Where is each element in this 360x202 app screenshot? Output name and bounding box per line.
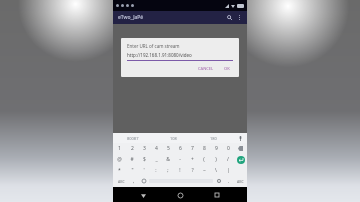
button[interactable]: Home bbox=[173, 188, 187, 202]
button[interactable]: # bbox=[126, 154, 138, 165]
button[interactable]: _ bbox=[150, 154, 162, 165]
staticText: ) bbox=[215, 156, 217, 163]
button[interactable]: 9 bbox=[210, 143, 222, 154]
staticText: - bbox=[179, 156, 181, 163]
button[interactable]: Back bbox=[136, 188, 150, 202]
staticText: * bbox=[118, 167, 121, 174]
button[interactable]: ~ bbox=[198, 165, 210, 176]
button[interactable]: . bbox=[224, 176, 233, 186]
staticText: " bbox=[131, 167, 134, 174]
button[interactable]: Emoji bbox=[139, 176, 149, 186]
button[interactable]: More options bbox=[236, 14, 243, 21]
button[interactable]: ABC bbox=[113, 176, 129, 186]
staticText: : bbox=[155, 167, 157, 174]
staticText: @ bbox=[117, 156, 122, 163]
button[interactable]: 108 bbox=[153, 133, 193, 143]
staticText: 7 bbox=[191, 145, 194, 152]
button[interactable]: ' bbox=[138, 165, 150, 176]
staticText: ~ bbox=[203, 167, 206, 174]
button[interactable]: ) bbox=[210, 154, 222, 165]
button[interactable]: ! bbox=[174, 165, 186, 176]
button[interactable]: ? bbox=[186, 165, 198, 176]
button[interactable]: 3 bbox=[138, 143, 150, 154]
button[interactable]: 2 bbox=[126, 143, 138, 154]
staticText: 80087 bbox=[127, 136, 139, 141]
button[interactable]: 8 bbox=[198, 143, 210, 154]
staticText: . bbox=[228, 178, 230, 185]
staticText: ' bbox=[143, 167, 145, 174]
staticText: + bbox=[191, 156, 194, 163]
staticText: 5 bbox=[167, 145, 170, 152]
button[interactable]: | bbox=[222, 165, 234, 176]
staticText: 6 bbox=[179, 145, 182, 152]
staticText: _ bbox=[155, 156, 158, 163]
button[interactable]: Search bbox=[226, 14, 233, 21]
button[interactable]: : bbox=[150, 165, 162, 176]
button[interactable]: 6 bbox=[174, 143, 186, 154]
staticText: 0 bbox=[227, 145, 230, 152]
staticText: http://192.168.1.91:8080/video bbox=[127, 52, 192, 58]
staticText: ? bbox=[191, 167, 194, 174]
staticText: | bbox=[227, 167, 230, 174]
button[interactable]: 80087 bbox=[113, 133, 153, 143]
button[interactable]: CANCEL bbox=[195, 65, 217, 72]
button[interactable]: Voice input bbox=[233, 133, 247, 143]
button[interactable]: Settings bbox=[213, 176, 224, 186]
button[interactable]: \ bbox=[210, 165, 222, 176]
staticText: & bbox=[166, 156, 170, 163]
button[interactable]: * bbox=[113, 165, 126, 176]
staticText: ABC bbox=[118, 179, 125, 184]
staticText: CANCEL bbox=[198, 66, 214, 71]
button[interactable]: " bbox=[126, 165, 138, 176]
button[interactable]: / bbox=[222, 154, 234, 165]
button[interactable]: 7 bbox=[186, 143, 198, 154]
button[interactable]: 180 bbox=[193, 133, 233, 143]
staticText: OK bbox=[224, 66, 230, 71]
staticText: , bbox=[133, 178, 135, 185]
staticText: Enter URL of cam stream bbox=[127, 43, 180, 49]
staticText: 8 bbox=[203, 145, 206, 152]
staticText: ! bbox=[179, 167, 181, 174]
button[interactable]: 4 bbox=[150, 143, 162, 154]
button[interactable]: eTwo_JaPé bbox=[113, 11, 247, 24]
staticText: ( bbox=[203, 156, 205, 163]
button[interactable]: ABC bbox=[233, 176, 247, 186]
button[interactable]: Enter bbox=[234, 154, 247, 165]
button[interactable]: Backspace bbox=[234, 143, 247, 154]
staticText: 4 bbox=[155, 145, 158, 152]
staticText: # bbox=[130, 156, 134, 163]
button[interactable]: Recent apps bbox=[210, 188, 224, 202]
staticText: / bbox=[227, 156, 229, 163]
staticText: ; bbox=[167, 167, 169, 174]
staticText: 9 bbox=[215, 145, 218, 152]
staticText: \ bbox=[215, 167, 217, 174]
button[interactable]: , bbox=[129, 176, 139, 186]
staticText: 180 bbox=[210, 136, 217, 141]
staticText: ABC bbox=[237, 179, 244, 184]
button[interactable]: ( bbox=[198, 154, 210, 165]
staticText: eTwo_JaPé bbox=[118, 14, 144, 21]
button[interactable]: $ bbox=[138, 154, 150, 165]
staticText: 3 bbox=[143, 145, 146, 152]
button[interactable]: 5 bbox=[162, 143, 174, 154]
button[interactable]: ; bbox=[162, 165, 174, 176]
staticText: 108 bbox=[170, 136, 177, 141]
button[interactable]: + bbox=[186, 154, 198, 165]
button[interactable]: 1 bbox=[113, 143, 126, 154]
button[interactable]: @ bbox=[113, 154, 126, 165]
button[interactable]: - bbox=[174, 154, 186, 165]
staticText: 2 bbox=[131, 145, 134, 152]
button[interactable]: & bbox=[162, 154, 174, 165]
button[interactable]: OK bbox=[221, 65, 233, 72]
staticText: 1 bbox=[118, 145, 121, 152]
staticText: $ bbox=[143, 156, 146, 163]
button[interactable]: 0 bbox=[222, 143, 234, 154]
